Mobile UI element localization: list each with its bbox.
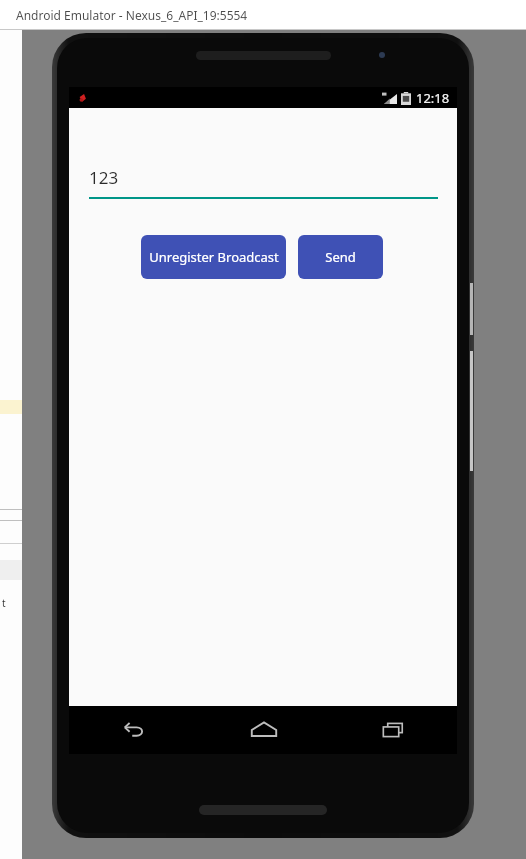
button[interactable]: Unregister Broadcast: [141, 235, 286, 279]
staticText: t: [2, 596, 6, 610]
button[interactable]: Home: [199, 706, 328, 754]
staticText: Android Emulator - Nexus_6_API_19:5554: [16, 7, 248, 23]
button[interactable]: 123: [89, 166, 438, 199]
staticText: 123: [89, 166, 119, 189]
button[interactable]: Send: [298, 235, 383, 279]
staticText: Unregister Broadcast: [149, 248, 279, 266]
staticText: Send: [325, 248, 356, 266]
button[interactable]: Recent apps: [328, 706, 457, 754]
button[interactable]: Back: [69, 706, 199, 754]
staticText: 12:18: [416, 89, 450, 107]
